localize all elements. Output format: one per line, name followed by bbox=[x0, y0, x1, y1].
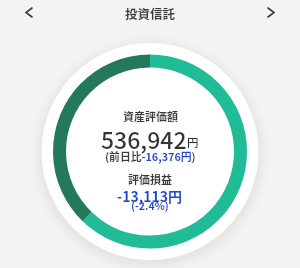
staticText: 評価損益 bbox=[128, 171, 172, 187]
staticText: 資産評価額 bbox=[123, 108, 178, 124]
staticText: (-2.4%) bbox=[131, 198, 169, 213]
button[interactable] bbox=[260, 2, 282, 22]
staticText: (前日比-16,376円) bbox=[105, 148, 196, 164]
staticText: 536,942 bbox=[101, 122, 187, 155]
staticText: 円 bbox=[187, 134, 199, 151]
button[interactable] bbox=[18, 2, 40, 22]
staticText: -13,113円 bbox=[117, 186, 183, 206]
staticText: 投資信託 bbox=[125, 4, 176, 22]
